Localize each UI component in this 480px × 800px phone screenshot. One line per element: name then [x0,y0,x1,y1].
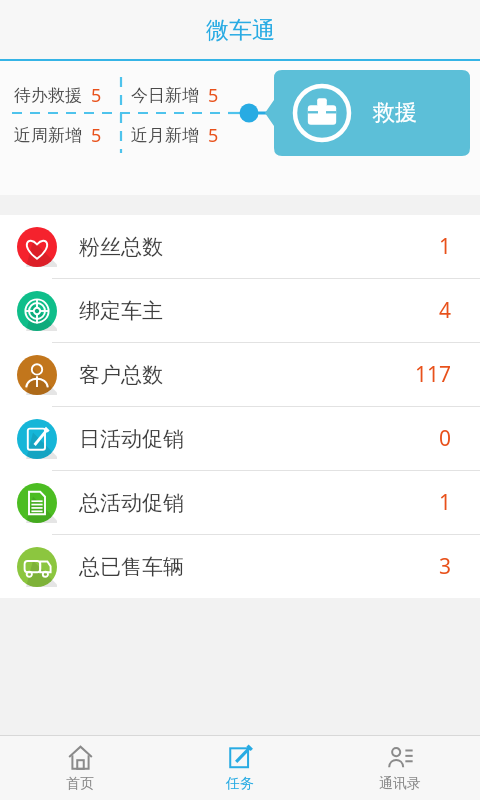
staticText: 今日新增 [131,85,199,106]
staticText: 117 [415,360,452,389]
button[interactable]: 近周新增 [14,123,102,148]
staticText: 5 [91,83,102,108]
button[interactable]: 通讯录 [320,736,480,800]
button[interactable]: 总活动促销 [0,471,480,534]
staticText: 5 [91,123,102,148]
button[interactable]: 今日新增 [131,83,219,108]
staticText: 粉丝总数 [79,234,163,260]
staticText: 1 [439,232,452,261]
staticText: 救援 [373,99,417,127]
staticText: 日活动促销 [79,426,184,452]
staticText: 3 [439,552,452,581]
button[interactable]: 粉丝总数 [0,215,480,278]
staticText: 总已售车辆 [79,554,184,580]
button[interactable]: 待办救援 [14,83,102,108]
staticText: 5 [208,123,219,148]
staticText: 首页 [66,775,94,793]
button[interactable]: 任务 [160,736,320,800]
staticText: 1 [439,488,452,517]
button[interactable]: 客户总数 [0,343,480,406]
button[interactable]: 总已售车辆 [0,535,480,598]
staticText: 总活动促销 [79,490,184,516]
staticText: 4 [439,296,452,325]
button[interactable]: 救援 [265,70,470,156]
staticText: 微车通 [206,16,275,45]
staticText: 通讯录 [379,775,421,793]
button[interactable]: 日活动促销 [0,407,480,470]
staticText: 绑定车主 [79,298,163,324]
staticText: 0 [439,424,452,453]
staticText: 5 [208,83,219,108]
staticText: 近月新增 [131,125,199,146]
staticText: 任务 [226,775,254,793]
staticText: 待办救援 [14,85,82,106]
button[interactable]: 绑定车主 [0,279,480,342]
staticText: 客户总数 [79,362,163,388]
button[interactable]: 首页 [0,736,160,800]
staticText: 近周新增 [14,125,82,146]
button[interactable]: 近月新增 [131,123,219,148]
